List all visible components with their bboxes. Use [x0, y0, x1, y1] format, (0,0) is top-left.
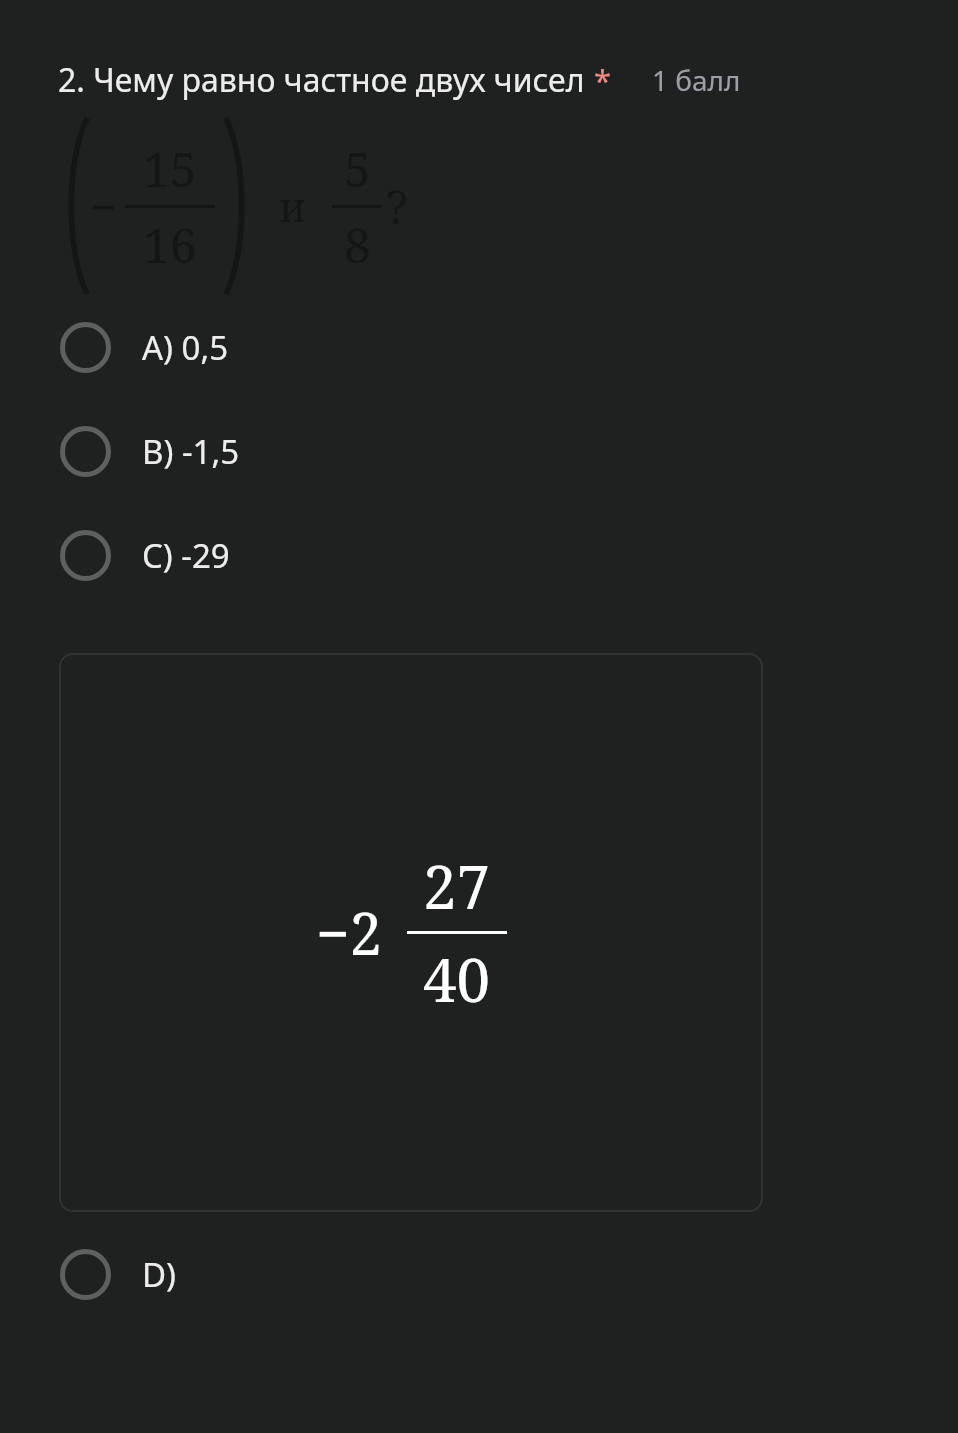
button[interactable]: A) 0,5	[0, 310, 958, 385]
staticText: и	[279, 179, 306, 233]
button[interactable]: C) -29	[0, 518, 958, 593]
staticText: ?	[386, 175, 408, 238]
staticText: 15	[143, 136, 197, 201]
staticText: 8	[344, 212, 371, 277]
button[interactable]: D)	[0, 1237, 958, 1312]
staticText: A) 0,5	[142, 325, 229, 370]
staticText: 2. Чему равно частное двух чисел	[58, 58, 585, 102]
staticText: −2	[316, 893, 383, 972]
staticText: C) -29	[142, 533, 230, 578]
staticText: 16	[143, 212, 197, 277]
button[interactable]: B) -1,5	[0, 414, 958, 489]
staticText: 40	[423, 938, 491, 1020]
staticText: D)	[142, 1252, 176, 1297]
staticText: *	[594, 59, 612, 101]
staticText: B) -1,5	[142, 429, 240, 474]
staticText: 27	[423, 845, 491, 927]
staticText: 5	[344, 136, 371, 201]
staticText: 1 балл	[652, 61, 741, 99]
